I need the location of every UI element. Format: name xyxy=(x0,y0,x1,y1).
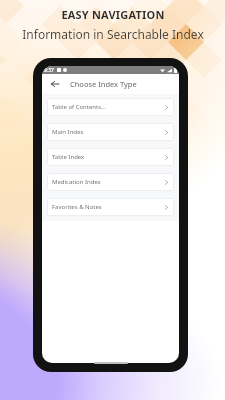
button[interactable]: Table of Contents... xyxy=(47,98,174,116)
staticText: 8:37 xyxy=(44,67,54,74)
staticText: EASY NAVIGATION xyxy=(61,7,165,22)
staticText: Favorites & Notes xyxy=(52,203,102,211)
button[interactable]: Table Index xyxy=(47,148,174,166)
staticText: Information in Searchable Index xyxy=(22,26,204,42)
staticText: Medication Index xyxy=(52,178,101,186)
button[interactable]: Medication Index xyxy=(47,173,174,191)
staticText: Main Index xyxy=(52,128,84,136)
button[interactable]: Main Index xyxy=(47,123,174,141)
staticText: Table of Contents... xyxy=(52,103,106,111)
staticText: Choose Index Type xyxy=(70,79,137,89)
button[interactable]: Back xyxy=(48,77,62,91)
button[interactable]: Favorites & Notes xyxy=(47,198,174,216)
staticText: Table Index xyxy=(52,153,85,161)
